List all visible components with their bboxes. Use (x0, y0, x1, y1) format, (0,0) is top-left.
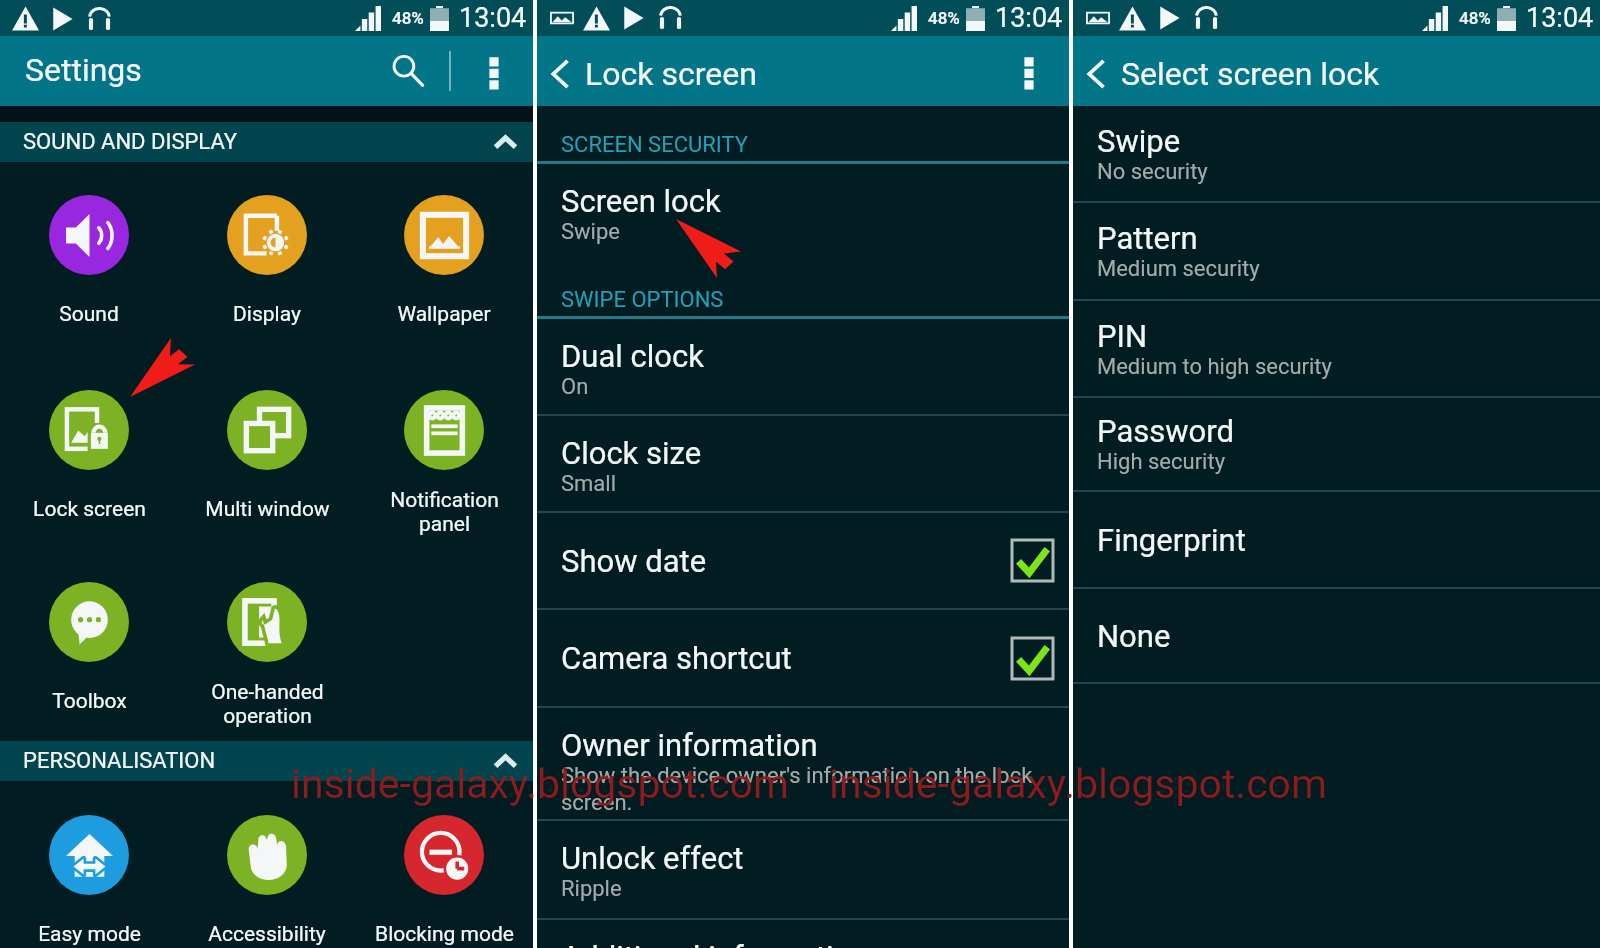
button[interactable]: None (1073, 589, 1600, 682)
staticText: Easy mode (38, 922, 141, 947)
button[interactable]: Easy mode (1, 815, 177, 947)
staticText: Blocking mode (375, 922, 514, 947)
staticText: inside-galaxy.blogspot.com (291, 760, 789, 808)
button[interactable]: More options (1001, 36, 1057, 106)
other: Collapse (493, 134, 518, 150)
button[interactable]: Accessibility (179, 815, 355, 947)
button[interactable]: Fingerprint (1073, 492, 1600, 587)
button[interactable]: Search (379, 36, 437, 106)
button[interactable]: Dual clock (537, 319, 1069, 414)
button[interactable]: Password (1073, 398, 1600, 490)
staticText: One-handed operation (211, 680, 324, 728)
staticText: Swipe (1097, 123, 1181, 159)
staticText: Lock screen (585, 55, 757, 93)
staticText: Sound (59, 302, 119, 327)
button[interactable]: Sound (1, 195, 177, 327)
button[interactable]: Notification panel (356, 390, 532, 536)
staticText: Select screen lock (1121, 55, 1380, 93)
button[interactable]: Toolbox (1, 582, 177, 714)
button[interactable]: Lock screen (1, 390, 177, 522)
staticText: Dual clock (561, 338, 704, 374)
staticText: High security (1097, 449, 1226, 475)
button[interactable]: PIN (1073, 301, 1600, 396)
button[interactable]: Clock size (537, 416, 1069, 511)
button[interactable]: SOUND AND DISPLAY (0, 122, 533, 162)
staticText: Owner information (561, 727, 818, 763)
button[interactable]: More options (463, 36, 525, 106)
staticText: Medium security (1097, 256, 1260, 282)
button[interactable]: Unlock effect (537, 821, 1069, 918)
staticText: Clock size (561, 435, 702, 471)
staticText: SCREEN SECURITY (561, 132, 748, 158)
staticText: No security (1097, 159, 1208, 185)
staticText: Settings (25, 51, 142, 89)
button[interactable]: Additional information (537, 920, 1069, 948)
button[interactable]: Screen lock (537, 164, 1069, 266)
staticText: Accessibility (208, 922, 326, 947)
staticText: inside-galaxy.blogspot.com (829, 760, 1327, 808)
staticText: 13:04 (459, 2, 527, 34)
staticText: Screen lock (561, 183, 721, 219)
button[interactable]: Swipe (1073, 106, 1600, 201)
staticText: Multi window (205, 497, 330, 522)
staticText: Unlock effect (561, 840, 744, 876)
staticText: Additional information (561, 939, 869, 948)
staticText: Show the device owner's information on t… (561, 763, 1033, 816)
staticText: Lock screen (33, 497, 146, 522)
staticText: Swipe (561, 219, 620, 245)
button[interactable]: Camera shortcut (537, 610, 1069, 706)
staticText: Ripple (561, 876, 622, 902)
button[interactable]: Multi window (179, 390, 355, 522)
staticText: Show date (561, 543, 707, 579)
staticText: None (1097, 618, 1171, 654)
staticText: Small (561, 471, 617, 497)
staticText: SOUND AND DISPLAY (23, 129, 237, 155)
button[interactable]: Pattern (1073, 203, 1600, 299)
button[interactable]: Show date (537, 513, 1069, 608)
staticText: PIN (1097, 318, 1148, 354)
staticText: Camera shortcut (561, 640, 792, 676)
staticText: Display (233, 302, 301, 327)
staticText: 13:04 (1526, 2, 1594, 34)
staticText: Password (1097, 413, 1234, 449)
staticText: Fingerprint (1097, 522, 1246, 558)
button[interactable]: Navigate up (1083, 55, 1380, 93)
staticText: Pattern (1097, 220, 1198, 256)
staticText: On (561, 374, 589, 400)
staticText: Wallpaper (397, 302, 491, 327)
button[interactable]: Owner information (537, 708, 1069, 819)
staticText: Medium to high security (1097, 354, 1332, 380)
staticText: Notification panel (390, 488, 499, 536)
button[interactable]: PERSONALISATION (0, 741, 533, 781)
staticText: SWIPE OPTIONS (561, 287, 724, 313)
button[interactable]: Wallpaper (356, 195, 532, 327)
staticText: 48% (1459, 8, 1491, 28)
button[interactable]: Blocking mode (356, 815, 532, 947)
other: Navigate up (1083, 58, 1107, 90)
button[interactable]: Display (179, 195, 355, 327)
staticText: Toolbox (52, 689, 127, 714)
button[interactable]: One-handed operation (179, 582, 355, 728)
staticText: 13:04 (995, 2, 1063, 34)
other: Navigate up (547, 58, 571, 90)
staticText: PERSONALISATION (23, 748, 216, 774)
other: Collapse (493, 753, 518, 769)
staticText: 48% (928, 8, 960, 28)
button[interactable]: Navigate up (547, 55, 757, 93)
staticText: 48% (392, 8, 424, 28)
